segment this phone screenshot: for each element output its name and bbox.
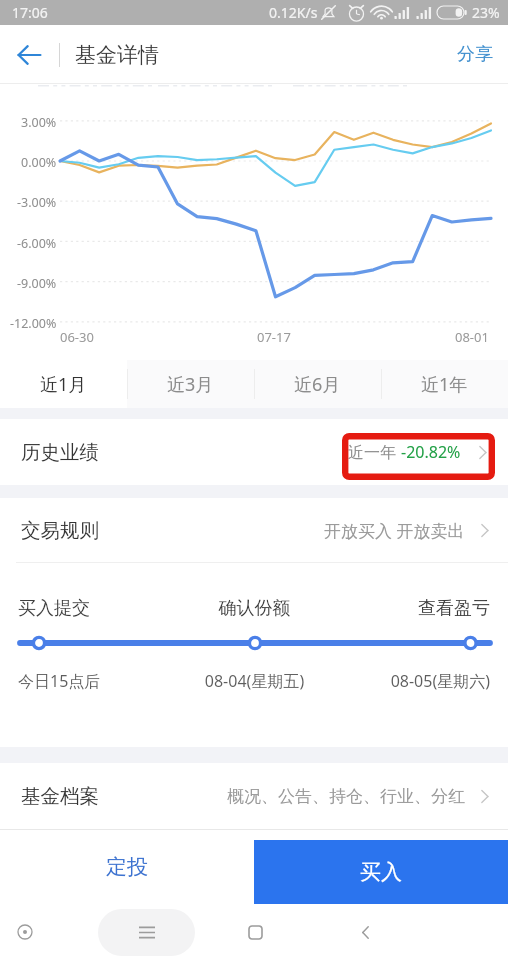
staticText: 17:06 [12,3,48,22]
staticText: 查看盈亏 [333,597,490,620]
button[interactable]: Back [0,25,58,84]
staticText: 近1月 [40,372,87,397]
staticText: 定投 [106,854,148,880]
staticText: -3.00% [17,194,57,211]
staticText: 08-01 [455,328,489,346]
button[interactable]: 定投 [0,829,254,904]
staticText: 近3月 [167,372,214,397]
staticText: 07-17 [257,328,291,346]
button[interactable]: 历史业绩 [0,419,508,485]
button[interactable]: 基金档案 [0,763,508,829]
button[interactable]: Assistant [5,912,45,952]
button[interactable]: 近1年 [381,360,508,408]
button[interactable]: 交易规则 [0,498,508,563]
staticText: 开放买入 开放卖出 [324,519,465,542]
staticText: 近1年 [421,372,468,397]
staticText: 23% [472,3,500,22]
staticText: -6.00% [17,235,57,252]
button[interactable]: Back [345,912,385,952]
staticText: 概况、公告、持仓、行业、分红 [227,786,465,807]
staticText: -20.82% [401,441,461,463]
staticText: 分享 [457,43,493,66]
staticText: 近6月 [294,372,341,397]
staticText: 今日15点后 [18,670,176,692]
staticText: 历史业绩 [21,440,99,465]
button[interactable]: 近3月 [127,360,254,408]
staticText: -9.00% [17,275,57,292]
button[interactable]: Menu [98,909,195,956]
staticText: 基金详情 [75,42,159,68]
staticText: 0.12K/s [269,3,318,22]
staticText: 确认份额 [176,597,333,620]
staticText: 3.00% [21,114,57,131]
staticText: 买入提交 [18,597,176,620]
staticText: 08-04(星期五) [176,670,333,692]
button[interactable]: 买入 [254,840,508,904]
button[interactable]: 近1月 [0,360,127,408]
staticText: 基金档案 [21,784,99,809]
staticText: 0.00% [21,154,57,171]
button[interactable]: Home [235,912,275,952]
button[interactable]: 分享 [441,25,508,84]
staticText: 08-05(星期六) [333,670,490,692]
staticText: 交易规则 [21,518,99,543]
staticText: 06-30 [60,328,94,346]
button[interactable]: 近6月 [254,360,381,408]
staticText: -12.00% [10,315,57,332]
staticText: 近一年 [348,441,401,463]
staticText: 买入 [360,859,402,885]
